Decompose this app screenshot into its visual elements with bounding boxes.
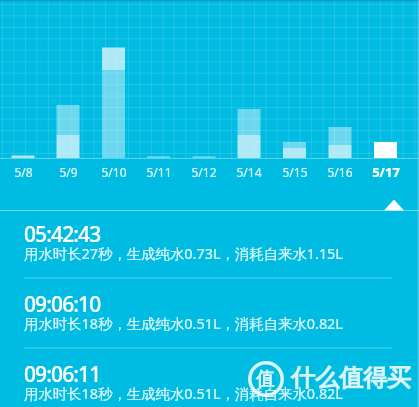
- staticText: 用水时长27秒，生成纯水0.73L，消耗自来水1.15L: [24, 244, 343, 264]
- staticText: 05:42:43: [24, 220, 101, 249]
- staticText: 5/14: [236, 164, 262, 180]
- staticText: 用水时长18秒，生成纯水0.51L，消耗自来水0.82L: [24, 314, 343, 334]
- staticText: 5/9: [59, 164, 78, 180]
- staticText: 5/17: [372, 163, 400, 181]
- button[interactable]: 09:06:11: [0, 351, 419, 407]
- staticText: 用水时长18秒，生成纯水0.51L，消耗自来水0.82L: [24, 384, 343, 404]
- button[interactable]: 05:42:43: [0, 211, 419, 281]
- staticText: 5/11: [146, 164, 172, 180]
- staticText: 什么值得买: [291, 363, 411, 393]
- button[interactable]: 09:06:10: [0, 281, 419, 351]
- staticText: 09:06:10: [24, 290, 101, 319]
- staticText: 5/15: [282, 164, 308, 180]
- staticText: 5/10: [101, 164, 127, 180]
- staticText: 5/12: [191, 164, 217, 180]
- staticText: 5/8: [14, 164, 33, 180]
- staticText: 5/16: [327, 164, 353, 180]
- staticText: 09:06:11: [24, 360, 101, 389]
- staticText: 值: [256, 368, 274, 391]
